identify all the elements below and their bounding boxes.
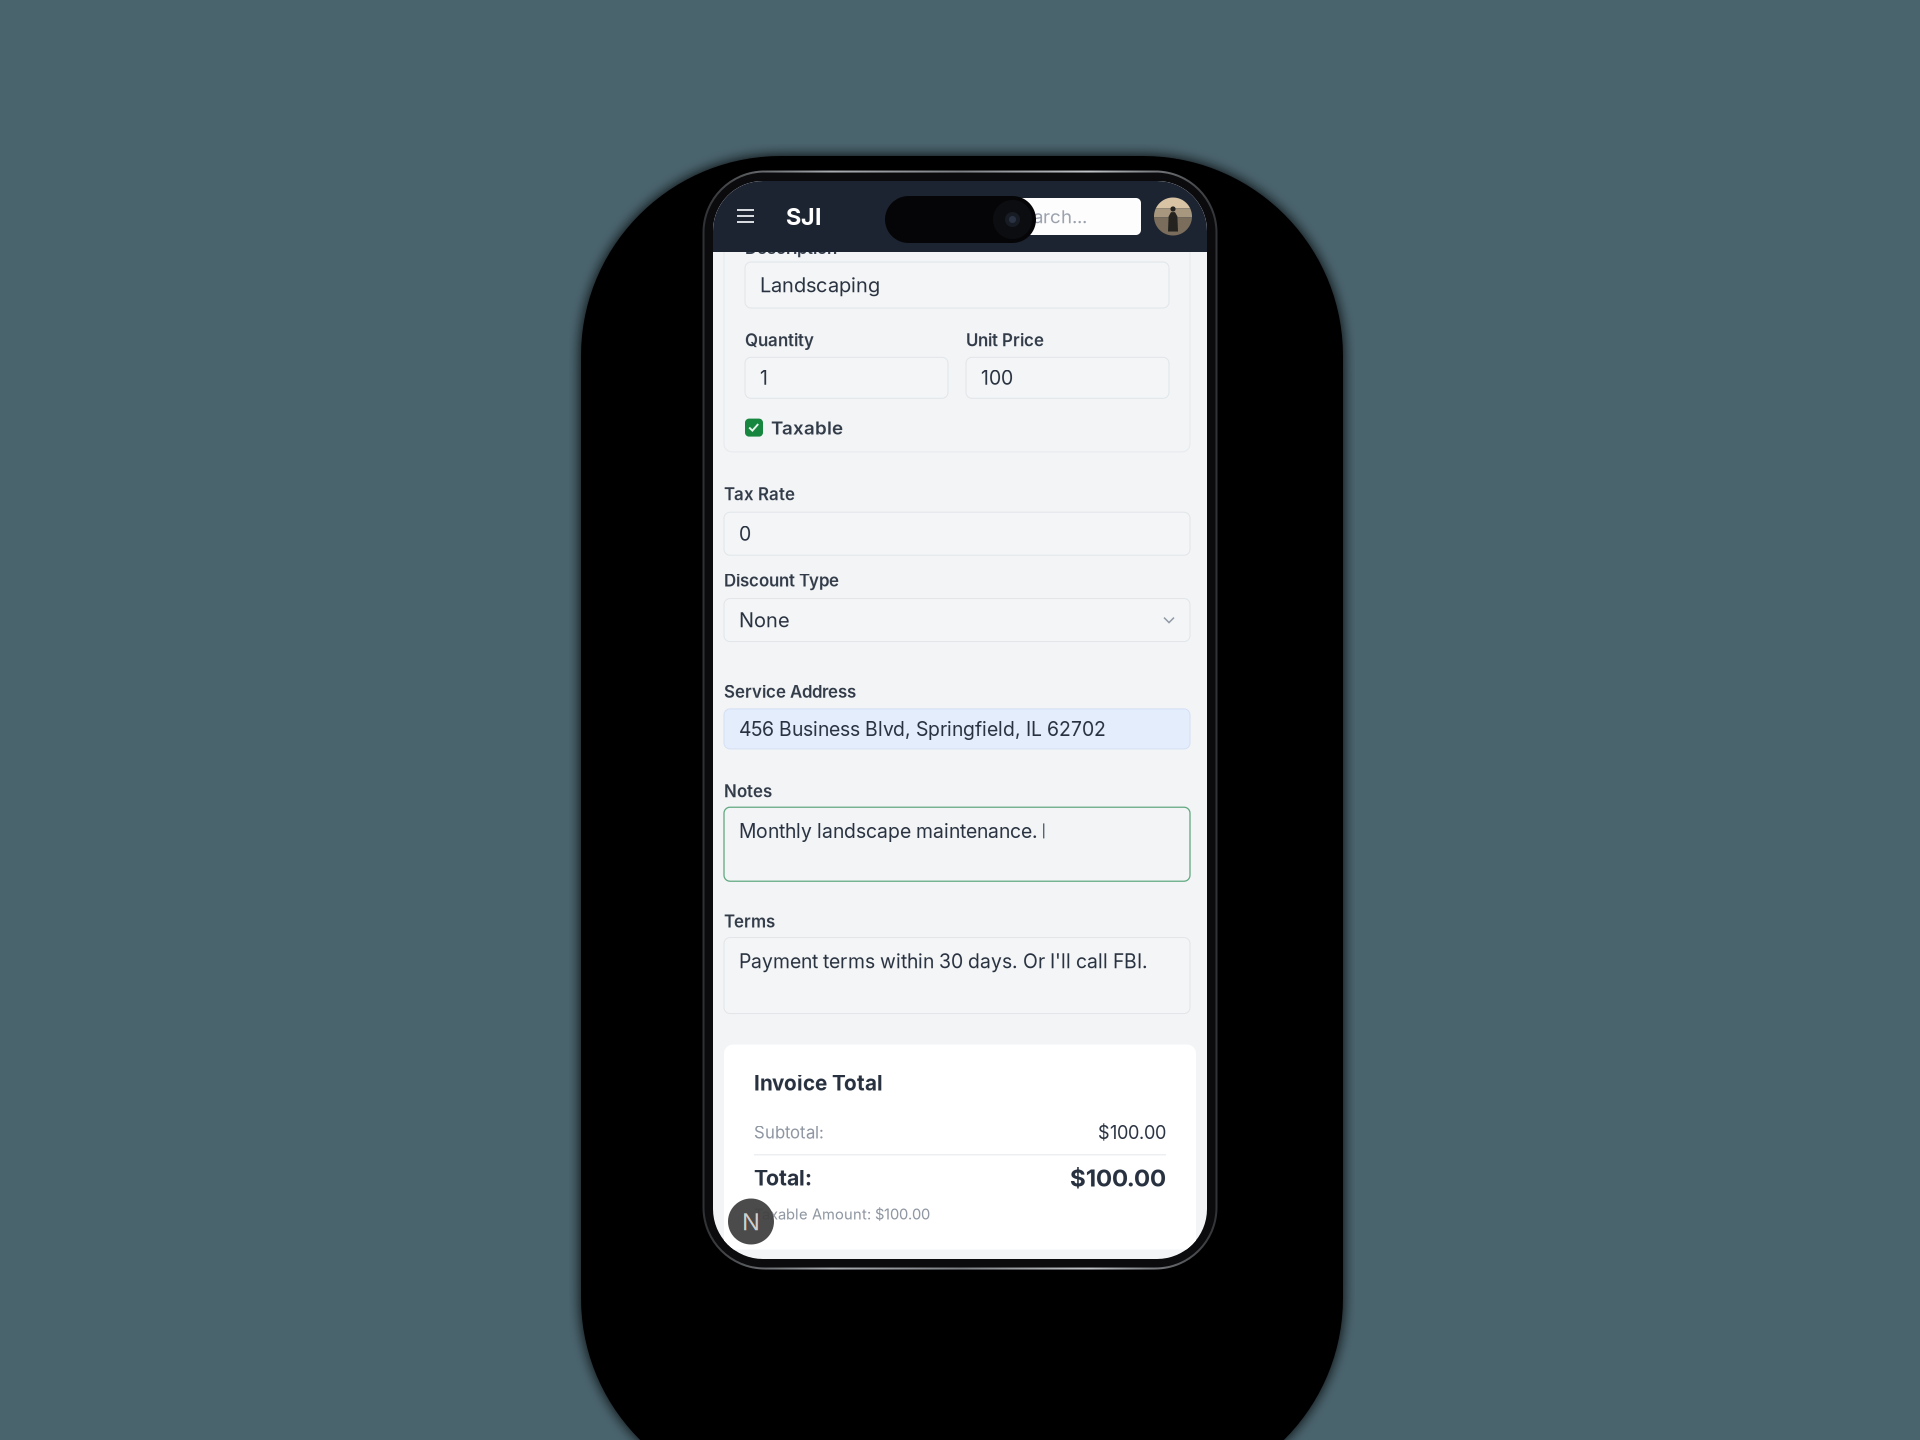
staticText: Monthly landscape maintenance.: [739, 819, 1038, 843]
staticText: Terms: [724, 911, 775, 931]
staticText: Notes: [724, 781, 772, 801]
button[interactable]: Monthly landscape maintenance.: [724, 807, 1190, 881]
staticText: Taxable Amount: $100.00: [754, 1205, 930, 1223]
staticText: Unit Price: [966, 330, 1044, 350]
staticText: Quantity: [745, 330, 814, 350]
button[interactable]: Search...: [999, 198, 1141, 235]
staticText: Search...: [1010, 205, 1087, 228]
staticText: Description: [745, 238, 837, 258]
staticText: Landscaping: [760, 273, 880, 297]
button[interactable]: Menu: [730, 199, 761, 234]
staticText: Taxable: [771, 416, 843, 439]
staticText: Total:: [754, 1165, 812, 1191]
button[interactable]: 0: [724, 512, 1190, 555]
button[interactable]: Account: [1141, 197, 1192, 235]
button[interactable]: Payment terms within 30 days. Or I'll ca…: [724, 937, 1190, 1013]
staticText: 0: [739, 522, 751, 545]
staticText: Payment terms within 30 days. Or I'll ca…: [739, 949, 1148, 973]
staticText: $100.00: [1098, 1122, 1166, 1143]
staticText: Subtotal:: [754, 1122, 824, 1143]
staticText: N: [742, 1207, 760, 1236]
staticText: SJI: [786, 202, 821, 231]
button[interactable]: None: [724, 599, 1190, 642]
button[interactable]: 456 Business Blvd, Springfield, IL 62702: [724, 709, 1190, 749]
button[interactable]: SJI: [761, 195, 829, 238]
button[interactable]: Landscaping: [745, 262, 1169, 308]
staticText: Invoice Total: [754, 1070, 883, 1095]
button[interactable]: Taxable: [745, 416, 1169, 439]
button[interactable]: 100: [966, 357, 1169, 398]
staticText: None: [739, 608, 790, 632]
staticText: 456 Business Blvd, Springfield, IL 62702: [739, 717, 1106, 741]
button[interactable]: 1: [745, 357, 948, 398]
staticText: Discount Type: [724, 570, 839, 590]
staticText: 1: [760, 366, 768, 389]
staticText: $100.00: [1070, 1163, 1166, 1192]
staticText: Tax Rate: [724, 484, 795, 504]
staticText: Service Address: [724, 682, 856, 702]
staticText: 100: [981, 366, 1013, 389]
